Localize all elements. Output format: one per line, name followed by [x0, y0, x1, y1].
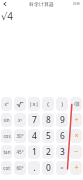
button[interactable]: 2	[42, 145, 54, 159]
button[interactable]: ÷	[70, 113, 82, 127]
button[interactable]: tan	[1, 145, 12, 159]
button[interactable]: +	[70, 161, 82, 175]
staticText: 5	[46, 130, 51, 142]
staticText: 0	[46, 162, 51, 174]
button[interactable]: Square root	[14, 97, 26, 111]
button[interactable]: x²	[1, 97, 12, 111]
button[interactable]: Backspace	[70, 97, 82, 111]
staticText: )	[61, 100, 63, 108]
button[interactable]: −	[70, 145, 82, 159]
button[interactable]: cot	[1, 161, 12, 175]
staticText: 9	[60, 114, 65, 126]
staticText: ×	[74, 131, 79, 141]
staticText: xʸ	[18, 117, 22, 123]
staticText: =	[60, 164, 64, 172]
staticText: 历史	[73, 2, 81, 7]
button[interactable]: 6	[56, 129, 68, 143]
button[interactable]: 60°	[14, 161, 26, 175]
button[interactable]: |x|	[28, 97, 40, 111]
staticText: cos	[3, 133, 11, 139]
button[interactable]: (	[42, 97, 54, 111]
button[interactable]: 0	[42, 161, 54, 175]
button[interactable]: =	[56, 161, 68, 175]
staticText: √4	[1, 9, 14, 23]
button[interactable]: 4	[28, 129, 40, 143]
button[interactable]: 45°	[14, 145, 26, 159]
button[interactable]: xʸ	[14, 113, 26, 127]
button[interactable]: ×	[70, 129, 82, 143]
staticText: 2	[46, 146, 51, 158]
staticText: .	[33, 162, 36, 174]
staticText: |x|	[29, 100, 39, 108]
staticText: +	[74, 163, 79, 173]
button[interactable]: 3	[56, 145, 68, 159]
staticText: 7	[32, 114, 37, 126]
staticText: x²	[4, 101, 9, 107]
button[interactable]: cos	[1, 129, 12, 143]
button[interactable]: .	[28, 161, 40, 175]
button[interactable]: 30°	[14, 129, 26, 143]
staticText: 8	[46, 114, 51, 126]
staticText: sin	[3, 117, 10, 123]
staticText: (	[47, 100, 49, 108]
staticText: 6	[60, 130, 65, 142]
button[interactable]: )	[56, 97, 68, 111]
staticText: −	[74, 147, 79, 157]
button[interactable]: 9	[56, 113, 68, 127]
staticText: 科学计算器	[29, 1, 54, 7]
staticText: 4	[32, 130, 37, 142]
button[interactable]: 7	[28, 113, 40, 127]
staticText: ÷	[74, 115, 79, 125]
staticText: 3	[60, 146, 65, 158]
button[interactable]: Back	[0, 0, 9, 8]
button[interactable]: 1	[28, 145, 40, 159]
button[interactable]: 历史	[73, 2, 81, 7]
staticText: cot	[3, 165, 10, 171]
button[interactable]: 8	[42, 113, 54, 127]
staticText: 45°	[16, 149, 24, 155]
staticText: 1	[32, 146, 37, 158]
staticText: tan	[3, 149, 11, 155]
button[interactable]: sin	[1, 113, 12, 127]
staticText: 30°	[16, 133, 24, 139]
staticText: 60°	[16, 165, 24, 171]
button[interactable]: 5	[42, 129, 54, 143]
